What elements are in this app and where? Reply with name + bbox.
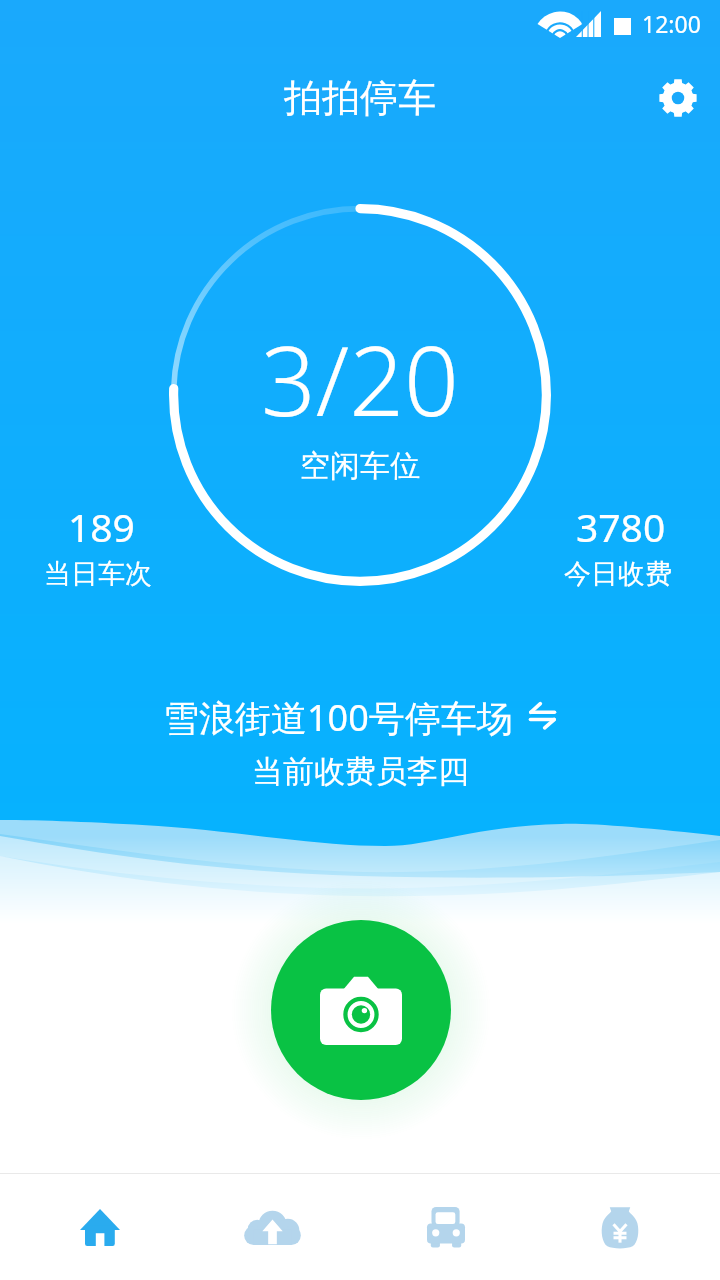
staticText: 当日车次 xyxy=(44,557,152,591)
button[interactable]: Home xyxy=(13,1174,186,1280)
button[interactable]: 雪浪街道100号停车场 xyxy=(159,693,562,742)
staticText: 3/20 xyxy=(261,313,459,444)
staticText: 3780 xyxy=(576,500,666,553)
button[interactable]: Settings xyxy=(650,70,706,126)
staticText: 今日收费 xyxy=(564,557,672,591)
staticText: 12:00 xyxy=(642,8,701,39)
button[interactable]: Upload xyxy=(186,1174,359,1280)
staticText: 189 xyxy=(68,500,135,553)
staticText: 当前收费员李四 xyxy=(252,752,469,791)
staticText: 空闲车位 xyxy=(300,447,420,485)
button[interactable]: Income xyxy=(533,1174,707,1280)
staticText: 拍拍停车 xyxy=(284,74,436,122)
staticText: 雪浪街道100号停车场 xyxy=(163,693,513,742)
button[interactable]: Parking xyxy=(359,1174,533,1280)
button[interactable]: Take photo xyxy=(271,920,451,1100)
